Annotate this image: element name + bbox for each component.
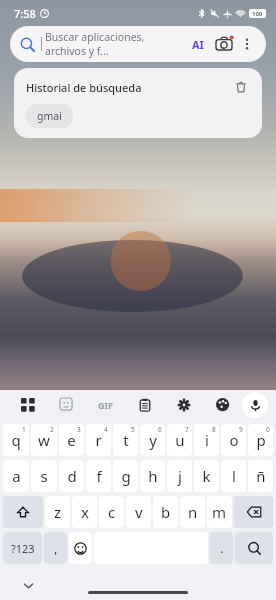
button[interactable]: Dictado por voz bbox=[242, 392, 268, 418]
button[interactable]: z bbox=[45, 496, 70, 528]
staticText: x bbox=[81, 502, 89, 522]
button[interactable]: ñ bbox=[248, 460, 273, 492]
staticText: 7 bbox=[185, 425, 189, 434]
staticText: f bbox=[96, 466, 102, 486]
button[interactable]: o bbox=[221, 424, 246, 456]
button[interactable]: , bbox=[44, 532, 67, 564]
button[interactable]: h bbox=[140, 460, 165, 492]
staticText: q bbox=[11, 430, 21, 450]
button[interactable]: f bbox=[86, 460, 111, 492]
staticText: 4 bbox=[104, 425, 108, 434]
other: Buscar bbox=[20, 37, 35, 52]
staticText: gmai bbox=[37, 109, 62, 123]
button[interactable]: Buscar bbox=[10, 26, 266, 62]
staticText: h bbox=[148, 466, 158, 486]
staticText: s bbox=[40, 466, 48, 486]
staticText: b bbox=[161, 502, 171, 522]
button[interactable]: b bbox=[153, 496, 178, 528]
staticText: o bbox=[229, 430, 239, 450]
button[interactable]: Más opciones bbox=[238, 35, 256, 53]
button[interactable]: k bbox=[194, 460, 219, 492]
staticText: 100 bbox=[252, 10, 263, 18]
staticText: m bbox=[212, 502, 227, 522]
staticText: 5 bbox=[131, 425, 135, 434]
staticText: z bbox=[54, 502, 62, 522]
button[interactable]: i bbox=[194, 424, 219, 456]
button[interactable]: gmai bbox=[26, 104, 73, 128]
staticText: t bbox=[123, 430, 129, 450]
staticText: l bbox=[232, 466, 236, 486]
button[interactable]: ?123 bbox=[3, 532, 42, 564]
staticText: Historial de búsqueda bbox=[26, 80, 232, 95]
staticText: v bbox=[135, 502, 143, 522]
staticText: ñ bbox=[256, 466, 266, 486]
button[interactable]: m bbox=[207, 496, 232, 528]
button[interactable]: Lens camera bbox=[214, 34, 234, 54]
button[interactable]: t bbox=[113, 424, 138, 456]
button[interactable]: Temas bbox=[203, 390, 242, 420]
button[interactable]: Stickers bbox=[47, 390, 86, 420]
button[interactable]: Portapapeles bbox=[125, 390, 164, 420]
button[interactable]: r bbox=[86, 424, 111, 456]
button[interactable]: u bbox=[167, 424, 192, 456]
staticText: a bbox=[12, 466, 21, 486]
staticText: GIF bbox=[98, 399, 113, 411]
staticText: 1 bbox=[22, 425, 26, 434]
staticText: 6 bbox=[158, 425, 162, 434]
button[interactable]: GIF bbox=[86, 390, 125, 420]
staticText: d bbox=[67, 466, 77, 486]
staticText: g bbox=[121, 466, 131, 486]
button[interactable]: n bbox=[180, 496, 205, 528]
button[interactable]: s bbox=[31, 460, 57, 492]
staticText: 3 bbox=[77, 425, 81, 434]
button[interactable]: l bbox=[221, 460, 246, 492]
staticText: Buscar aplicaciones, archivos y f... bbox=[45, 30, 188, 58]
button[interactable]: Retroceso bbox=[234, 496, 273, 528]
button[interactable]: AI bbox=[188, 34, 208, 54]
staticText: 2 bbox=[50, 425, 54, 434]
staticText: u bbox=[175, 430, 185, 450]
button[interactable]: Ocultar teclado bbox=[18, 575, 38, 595]
button[interactable]: y bbox=[140, 424, 165, 456]
button[interactable]: Ajustes bbox=[164, 390, 203, 420]
button[interactable]: e bbox=[59, 424, 84, 456]
button[interactable]: x bbox=[72, 496, 97, 528]
staticText: 0 bbox=[266, 425, 270, 434]
button[interactable]: a bbox=[3, 460, 29, 492]
staticText: k bbox=[202, 466, 211, 486]
staticText: y bbox=[149, 430, 157, 450]
button[interactable]: Buscar bbox=[235, 532, 273, 564]
staticText: 7:58 bbox=[14, 6, 36, 21]
button[interactable]: w bbox=[31, 424, 57, 456]
staticText: . bbox=[220, 539, 224, 557]
staticText: , bbox=[54, 539, 58, 557]
staticText: r bbox=[95, 430, 102, 450]
staticText: j bbox=[178, 466, 182, 486]
staticText: AI bbox=[192, 37, 204, 52]
button[interactable]: Borrar historial bbox=[232, 78, 250, 96]
staticText: 8 bbox=[212, 425, 216, 434]
staticText: n bbox=[188, 502, 198, 522]
button[interactable]: q bbox=[3, 424, 29, 456]
staticText: c bbox=[108, 502, 116, 522]
button[interactable]: . bbox=[210, 532, 233, 564]
staticText: ?123 bbox=[11, 541, 35, 556]
staticText: i bbox=[205, 430, 209, 450]
button[interactable]: j bbox=[167, 460, 192, 492]
button[interactable]: d bbox=[59, 460, 84, 492]
staticText: 9 bbox=[239, 425, 243, 434]
staticText: w bbox=[38, 430, 50, 450]
staticText: p bbox=[256, 430, 266, 450]
staticText: e bbox=[67, 430, 76, 450]
button[interactable]: Emoji bbox=[69, 532, 92, 564]
button[interactable]: c bbox=[99, 496, 124, 528]
button[interactable]: p bbox=[248, 424, 273, 456]
button[interactable]: g bbox=[113, 460, 138, 492]
button[interactable]: v bbox=[126, 496, 151, 528]
button[interactable]: Mayúsculas bbox=[3, 496, 43, 528]
button[interactable]: Apps bbox=[8, 390, 47, 420]
